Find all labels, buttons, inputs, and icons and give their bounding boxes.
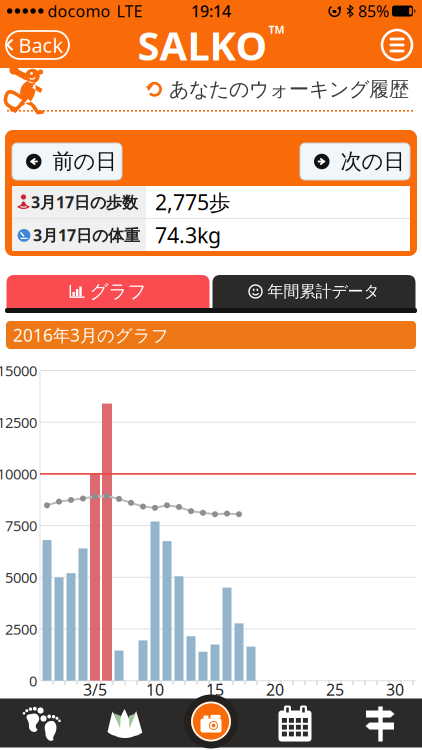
staticText: 85% — [358, 0, 389, 22]
button[interactable]: 前の日 — [12, 143, 122, 180]
button[interactable] — [92, 700, 158, 746]
staticText: 2500 — [5, 619, 37, 639]
staticText: 15000 — [0, 361, 37, 380]
staticText: 10 — [146, 679, 164, 700]
staticText: 74.3kg — [155, 221, 221, 249]
staticText: 3月17日の歩数 — [31, 191, 138, 213]
button[interactable] — [8, 700, 74, 746]
button[interactable]: グラフ — [6, 275, 209, 308]
staticText: 25 — [326, 679, 344, 700]
button[interactable] — [380, 28, 414, 62]
staticText: Back — [18, 32, 63, 58]
staticText: docomo — [48, 0, 111, 22]
button[interactable]: 年間累計データ — [212, 275, 415, 308]
button[interactable] — [347, 700, 413, 746]
staticText: 年間累計データ — [267, 282, 379, 301]
staticText: 2,775歩 — [155, 188, 230, 216]
staticText: 20 — [266, 679, 284, 700]
staticText: 次の日 — [340, 148, 404, 175]
button[interactable] — [262, 700, 328, 746]
staticText: グラフ — [89, 280, 146, 303]
staticText: 2016年3月のグラフ — [13, 323, 169, 346]
staticText: 7500 — [5, 516, 37, 535]
staticText: 19:14 — [191, 0, 231, 22]
staticText: 15 — [206, 679, 224, 700]
staticText: 3/5 — [83, 679, 107, 700]
staticText: SALKO — [137, 18, 267, 71]
staticText: 10000 — [0, 464, 37, 484]
staticText: TM — [268, 22, 284, 37]
button[interactable] — [184, 694, 238, 748]
staticText: 30 — [386, 679, 404, 700]
staticText: あなたのウォーキング履歴 — [169, 77, 409, 102]
button[interactable]: Back — [5, 30, 70, 60]
staticText: 12500 — [0, 412, 37, 432]
staticText: LTE — [117, 0, 143, 22]
staticText: 5000 — [5, 568, 37, 587]
staticText: 3月17日の体重 — [33, 224, 140, 246]
staticText: 前の日 — [52, 148, 116, 175]
staticText: 0 — [29, 671, 37, 690]
button[interactable]: 次の日 — [300, 143, 410, 180]
